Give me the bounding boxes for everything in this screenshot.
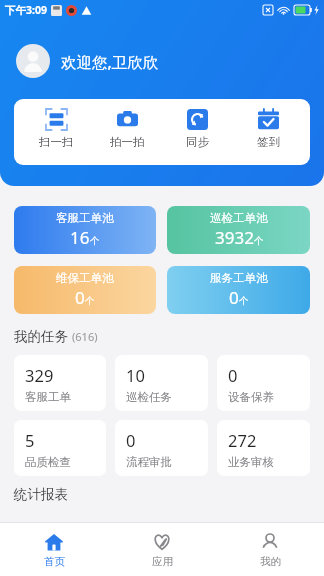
staticText: 0 [75, 286, 85, 309]
staticText: 个 [254, 235, 264, 247]
button[interactable]: 首页 [0, 526, 108, 574]
staticText: 我的 [260, 555, 281, 568]
staticText: 欢迎您,卫欣欣 [61, 51, 159, 72]
button[interactable]: 10 [115, 355, 208, 411]
button[interactable]: 拍一拍 [99, 108, 155, 150]
staticText: 流程审批 [126, 455, 172, 469]
staticText: 272 [228, 429, 257, 451]
button[interactable]: 应用 [108, 526, 216, 574]
staticText: 0 [228, 364, 238, 386]
staticText: 统计报表 [14, 486, 68, 503]
button[interactable]: 客服工单池 [14, 206, 156, 254]
staticText: 业务审核 [228, 455, 274, 469]
staticText: 3932 [215, 226, 254, 249]
staticText: 个 [239, 295, 249, 307]
button[interactable]: 扫一扫 [28, 108, 84, 150]
staticText: 签到 [257, 135, 280, 149]
button[interactable]: 签到 [240, 108, 296, 150]
staticText: 维保工单池 [56, 271, 114, 285]
staticText: 巡检工单池 [210, 211, 268, 225]
staticText: 个 [85, 295, 95, 307]
staticText: 拍一拍 [110, 135, 145, 149]
staticText: 329 [25, 364, 54, 386]
staticText: 扫一扫 [39, 135, 74, 149]
staticText: 0 [126, 429, 136, 451]
staticText: 下午3:09 [5, 3, 47, 17]
staticText: 我的任务 [14, 328, 68, 345]
staticText: 应用 [152, 555, 173, 568]
staticText: 品质检查 [25, 455, 71, 469]
button[interactable]: 272 [217, 420, 310, 476]
button[interactable]: 服务工单池 [167, 266, 310, 314]
button[interactable]: 0 [217, 355, 310, 411]
staticText: 巡检任务 [126, 390, 172, 404]
button[interactable]: 5 [14, 420, 106, 476]
staticText: 10 [126, 364, 145, 386]
button[interactable]: 巡检工单池 [167, 206, 310, 254]
button[interactable]: 维保工单池 [14, 266, 156, 314]
button[interactable]: 同步 [169, 108, 225, 150]
staticText: 服务工单池 [210, 271, 268, 285]
staticText: 同步 [186, 135, 209, 149]
button[interactable]: 我的 [216, 526, 324, 574]
button[interactable]: 329 [14, 355, 106, 411]
staticText: 个 [90, 235, 100, 247]
staticText: 客服工单 [25, 390, 71, 404]
staticText: 客服工单池 [56, 211, 114, 225]
staticText: 5 [25, 429, 35, 451]
staticText: 0 [229, 286, 239, 309]
staticText: 首页 [44, 555, 65, 568]
staticText: 16 [70, 226, 90, 249]
staticText: (616) [72, 329, 98, 344]
staticText: 设备保养 [228, 390, 274, 404]
button[interactable]: 0 [115, 420, 208, 476]
